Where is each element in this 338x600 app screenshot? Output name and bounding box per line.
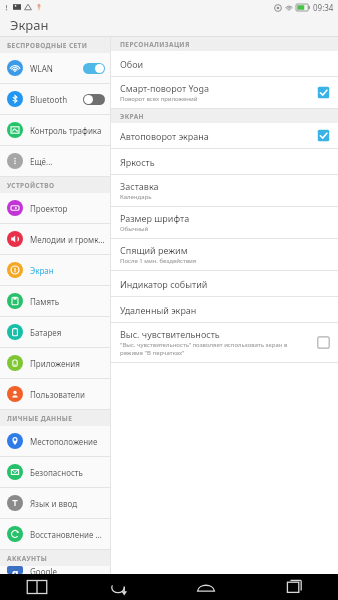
button[interactable]: Батарея xyxy=(0,317,110,348)
button[interactable]: Яркость xyxy=(111,149,338,175)
staticText: Пользователи xyxy=(30,389,105,400)
button[interactable]: Восстановление и сб xyxy=(0,519,110,550)
staticText: Выс. чувствительность xyxy=(120,328,220,340)
staticText: Экран xyxy=(30,265,105,276)
button[interactable]: Местоположение xyxy=(0,426,110,457)
staticText: WLAN xyxy=(30,63,80,74)
staticText: "Выс. чувствительность" позволяет исполь… xyxy=(120,341,311,357)
staticText: Заставка xyxy=(120,180,159,192)
button[interactable]: Приложения xyxy=(0,348,110,379)
button[interactable]: Автоповорот экрана xyxy=(111,123,338,149)
button[interactable]: WLAN xyxy=(0,53,110,84)
button[interactable]: Пользователи xyxy=(0,379,110,410)
button[interactable]: Не отмечено xyxy=(317,336,330,349)
staticText: Память xyxy=(30,296,105,307)
button[interactable]: Выключено xyxy=(83,94,105,105)
staticText: Обычный xyxy=(120,225,149,233)
staticText: Проектор xyxy=(30,203,105,214)
staticText: Google xyxy=(30,566,105,574)
button[interactable]: Обои xyxy=(111,51,338,77)
staticText: Поворот всех приложений xyxy=(120,95,198,103)
button[interactable]: Спящий режим xyxy=(111,239,338,271)
button[interactable]: g xyxy=(0,566,110,574)
staticText: Мелодии и громкость xyxy=(30,234,105,245)
button[interactable]: Ещё... xyxy=(0,146,110,177)
staticText: Индикатор событий xyxy=(120,278,208,290)
staticText: Приложения xyxy=(30,358,105,369)
button[interactable]: Язык и ввод xyxy=(0,488,110,519)
staticText: Автоповорот экрана xyxy=(120,130,209,142)
staticText: Язык и ввод xyxy=(30,498,105,509)
staticText: ЭКРАН xyxy=(120,112,144,121)
button[interactable]: Безопасность xyxy=(0,457,110,488)
staticText: Календарь xyxy=(120,193,152,201)
staticText: Восстановление и сб xyxy=(30,529,105,540)
button[interactable]: Заставка xyxy=(111,175,338,207)
button[interactable]: Разделить экран xyxy=(0,574,74,600)
button[interactable]: Размер шрифта xyxy=(111,207,338,239)
staticText: Экран xyxy=(10,16,49,34)
staticText: Яркость xyxy=(120,156,155,168)
staticText: Батарея xyxy=(30,327,105,338)
button[interactable]: Главный экран xyxy=(162,574,250,600)
staticText: Безопасность xyxy=(30,467,105,478)
staticText: АККАУНТЫ xyxy=(7,554,48,563)
button[interactable]: Память xyxy=(0,286,110,317)
staticText: Bluetooth xyxy=(30,94,80,105)
staticText: g xyxy=(12,566,19,574)
staticText: После 1 мин. бездействия xyxy=(120,257,197,265)
staticText: БЕСПРОВОДНЫЕ СЕТИ xyxy=(7,41,88,50)
button[interactable]: Проектор xyxy=(0,193,110,224)
staticText: ЛИЧНЫЕ ДАННЫЕ xyxy=(7,414,73,423)
button[interactable]: Отмечено xyxy=(317,86,330,99)
staticText: Удаленный экран xyxy=(120,304,197,316)
staticText: 09:34 xyxy=(313,2,334,13)
button[interactable]: Выс. чувствительность xyxy=(111,323,338,363)
staticText: Местоположение xyxy=(30,436,105,447)
button[interactable]: Включено xyxy=(83,63,105,74)
button[interactable]: Отмечено xyxy=(317,129,330,142)
button[interactable]: Контроль трафика xyxy=(0,115,110,146)
button[interactable]: Bluetooth xyxy=(0,84,110,115)
button[interactable]: Назад xyxy=(74,574,162,600)
staticText: Спящий режим xyxy=(120,244,188,256)
staticText: ПЕРСОНАЛИЗАЦИЯ xyxy=(120,40,190,49)
staticText: Контроль трафика xyxy=(30,125,105,136)
button[interactable]: Мелодии и громкость xyxy=(0,224,110,255)
staticText: УСТРОЙСТВО xyxy=(7,181,55,190)
button[interactable]: Смарт-поворот Yoga xyxy=(111,77,338,109)
staticText: Размер шрифта xyxy=(120,212,190,224)
button[interactable]: Индикатор событий xyxy=(111,271,338,297)
staticText: Смарт-поворот Yoga xyxy=(120,82,210,94)
button[interactable]: Обзор xyxy=(250,574,338,600)
staticText: Обои xyxy=(120,58,144,70)
button[interactable]: Экран xyxy=(0,255,110,286)
staticText: Ещё... xyxy=(30,156,105,167)
button[interactable]: Удаленный экран xyxy=(111,297,338,323)
